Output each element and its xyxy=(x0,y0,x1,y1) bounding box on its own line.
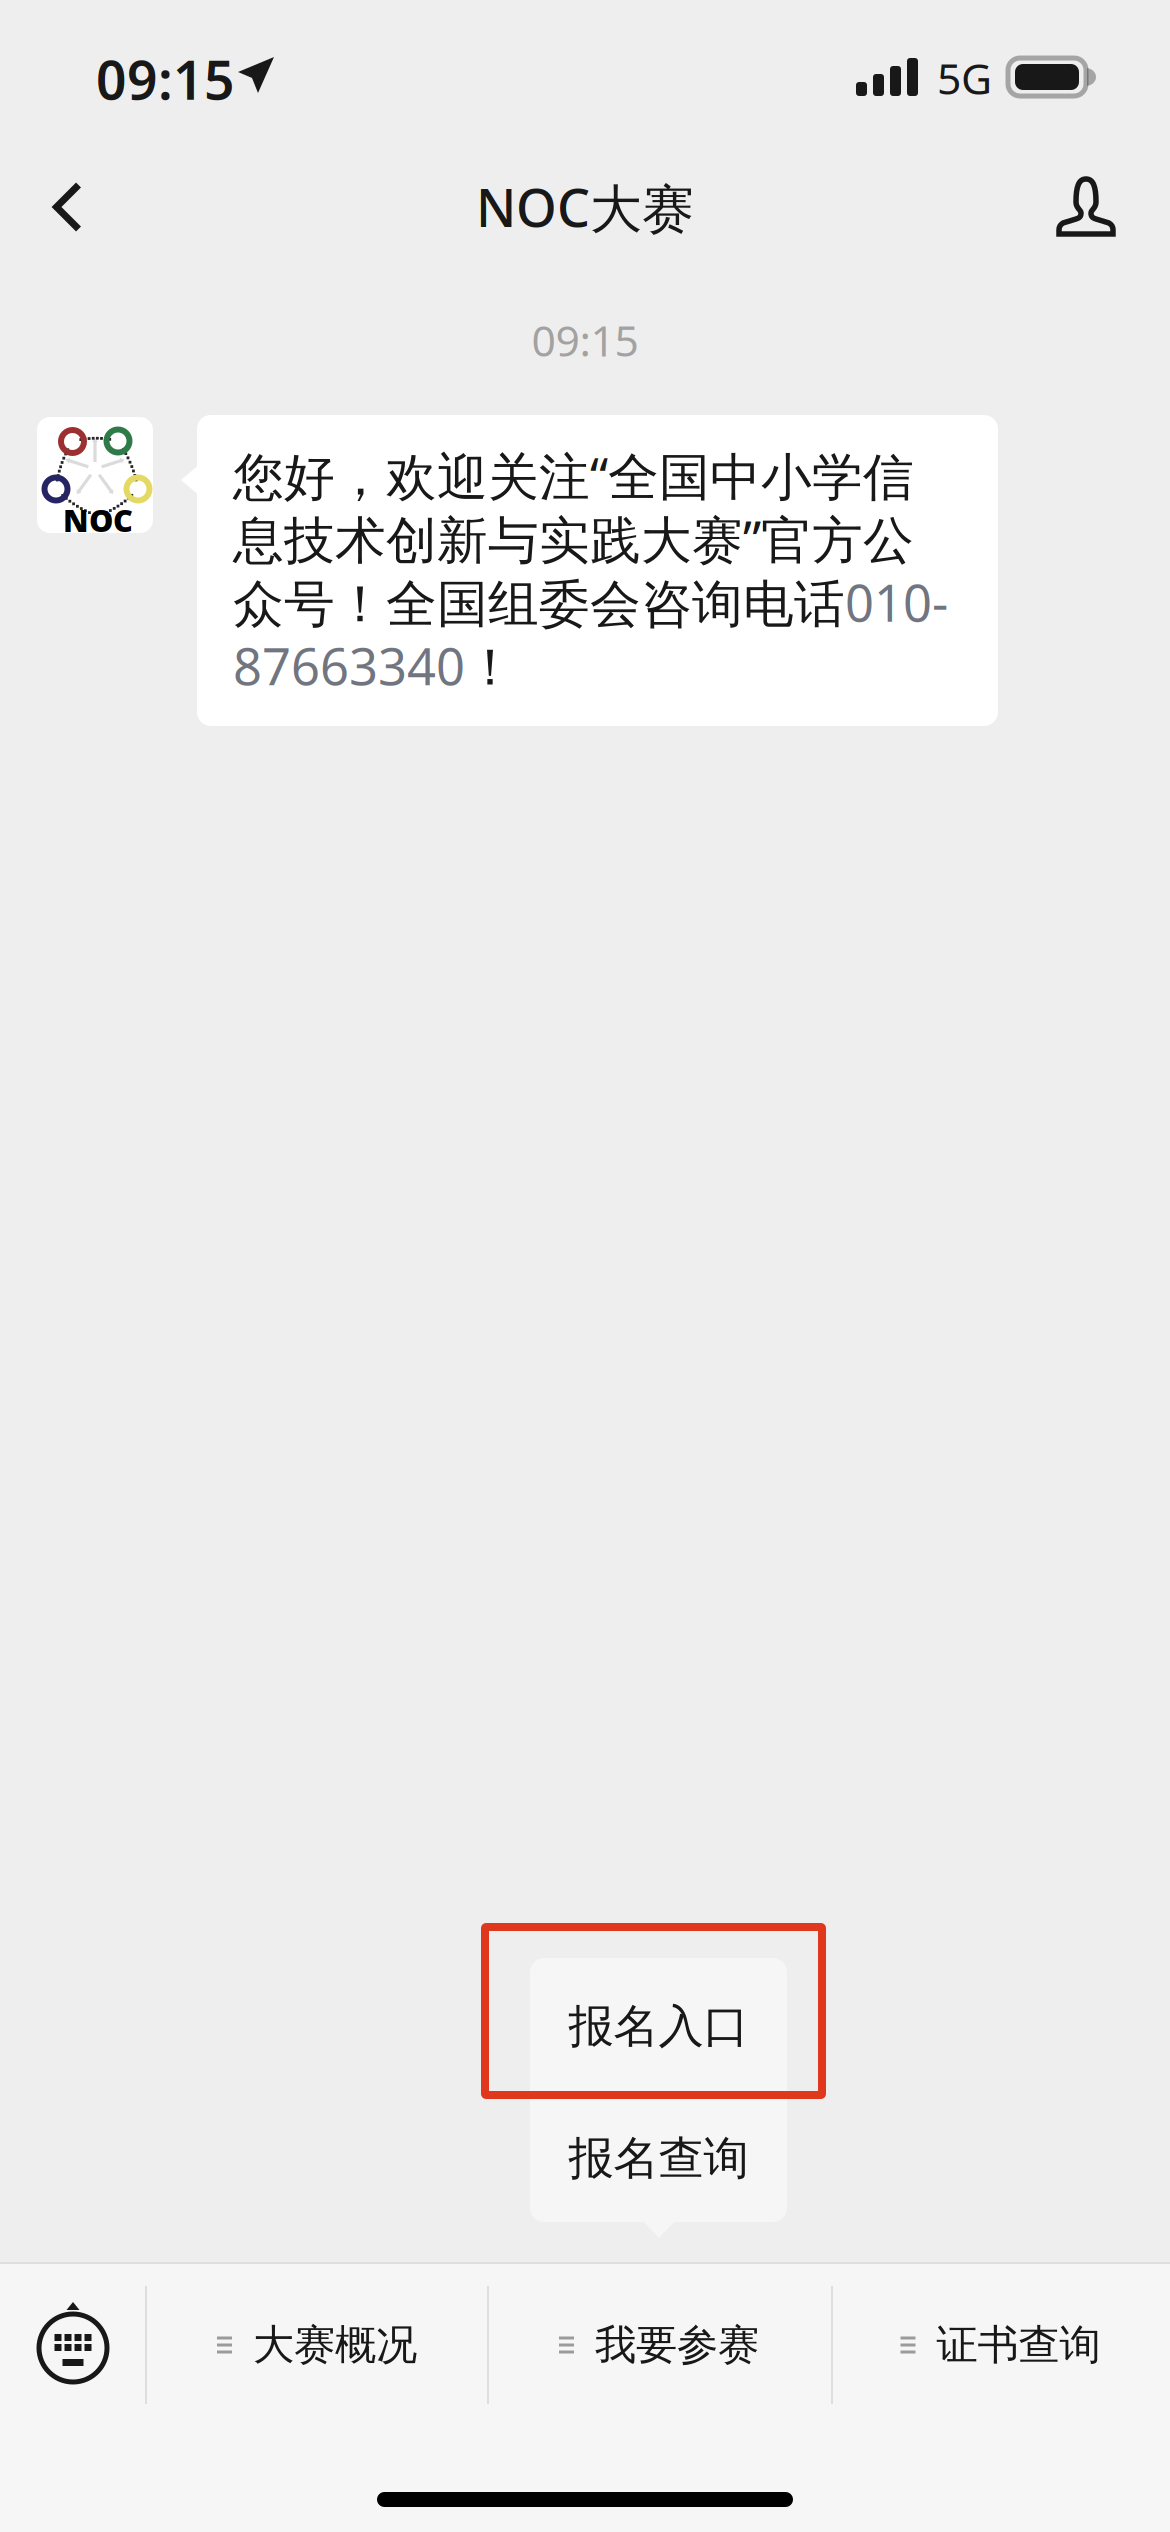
staticText: 证书查询 xyxy=(936,2320,1100,2370)
button[interactable]: 我要参赛 xyxy=(488,2272,830,2418)
staticText: 报名查询 xyxy=(568,2131,748,2186)
staticText: 大赛概况 xyxy=(253,2320,417,2370)
staticText: 09:15 xyxy=(531,312,638,368)
button[interactable]: 报名入口 xyxy=(530,1958,787,2095)
button[interactable]: 大赛概况 xyxy=(146,2272,488,2418)
button[interactable]: 报名查询 xyxy=(530,2095,787,2222)
button[interactable]: Keyboard xyxy=(0,2264,146,2410)
button[interactable]: Official account profile xyxy=(1031,151,1141,261)
staticText: 我要参赛 xyxy=(595,2320,759,2370)
staticText: 09:15 xyxy=(96,44,235,114)
staticText: 报名入口 xyxy=(568,1999,748,2054)
staticText: 您好，欢迎关注“全国中小学信息技术创新与实践大赛”官方公众号！全国组委会咨询电话… xyxy=(233,442,948,699)
staticText: NOC大赛 xyxy=(476,172,694,242)
button[interactable]: 证书查询 xyxy=(831,2272,1170,2418)
staticText: NOC xyxy=(63,500,133,540)
staticText: 5G xyxy=(937,50,992,106)
button[interactable]: Back xyxy=(14,154,124,264)
